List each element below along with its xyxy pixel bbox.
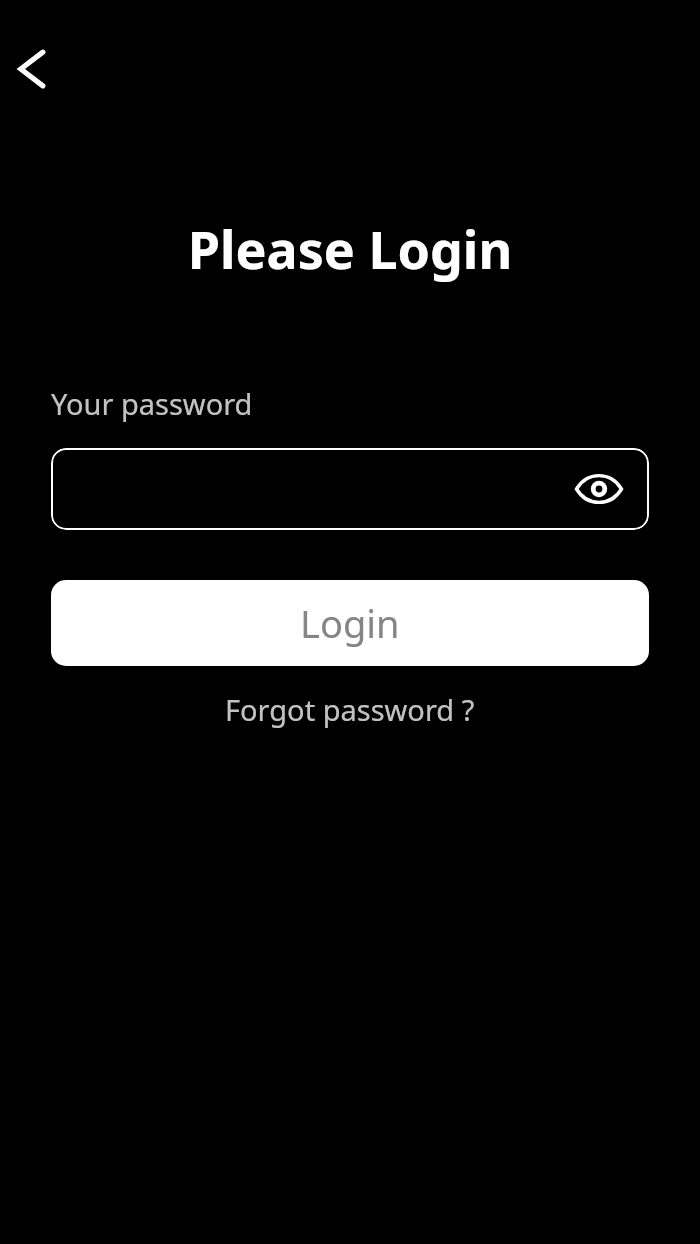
button[interactable]: Back xyxy=(4,40,62,98)
staticText: Login xyxy=(300,597,400,649)
button[interactable]: Show password xyxy=(51,448,649,530)
button[interactable]: Forgot password ? xyxy=(217,686,483,733)
staticText: Forgot password ? xyxy=(225,690,475,729)
button[interactable]: Show password xyxy=(572,462,626,516)
staticText: Your password xyxy=(51,384,253,423)
button[interactable]: Login xyxy=(51,580,649,666)
staticText: Please Login xyxy=(0,213,700,284)
